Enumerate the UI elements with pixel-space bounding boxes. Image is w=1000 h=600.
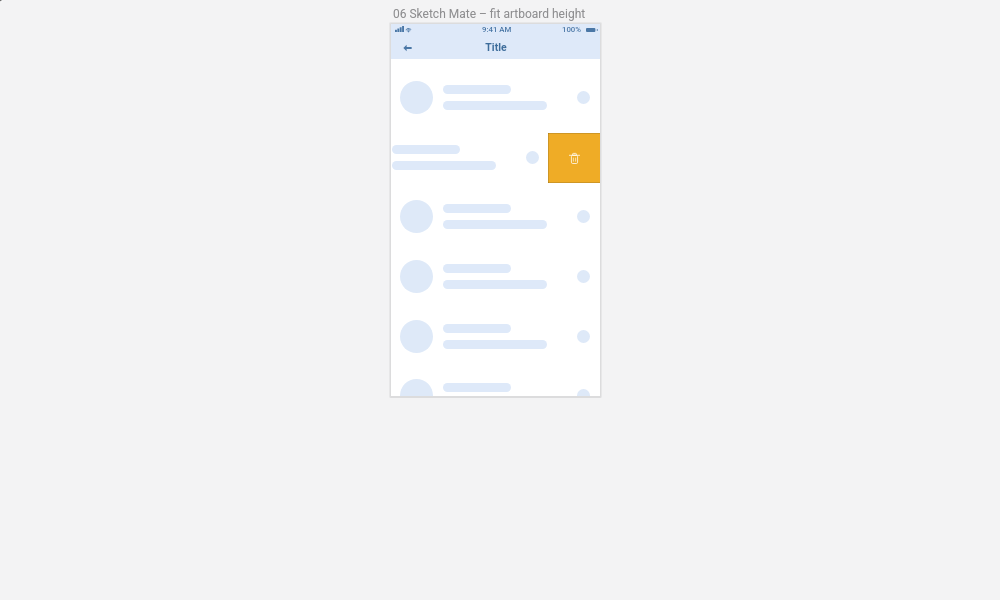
- staticText: 06 Sketch Mate – fit artboard height: [393, 7, 586, 21]
- button[interactable]: Delete: [548, 133, 600, 183]
- button[interactable]: Back: [398, 39, 416, 57]
- button[interactable]: Delete: [391, 127, 600, 187]
- button[interactable]: [391, 186, 600, 246]
- staticText: Title: [485, 41, 507, 53]
- staticText: 100%: [562, 25, 582, 34]
- button[interactable]: [391, 365, 600, 396]
- button[interactable]: [391, 306, 600, 366]
- button[interactable]: [391, 246, 600, 306]
- button[interactable]: [391, 67, 600, 127]
- staticText: 9:41 AM: [482, 25, 512, 34]
